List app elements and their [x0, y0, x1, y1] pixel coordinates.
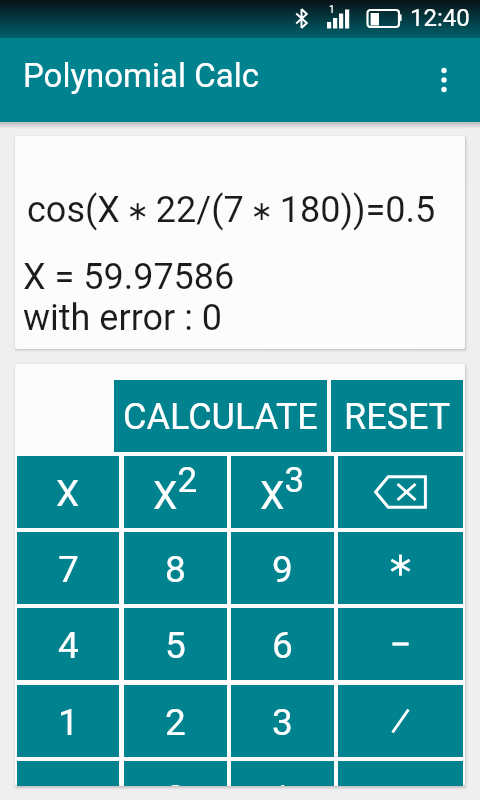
button[interactable]: 5 [124, 608, 227, 680]
button[interactable] [338, 532, 463, 604]
button[interactable]: 2 [124, 685, 227, 757]
staticText: X = 59.97586 with error : 0 [23, 256, 235, 338]
staticText: RESET [344, 396, 451, 438]
button[interactable] [338, 456, 463, 528]
staticText: cos(X ∗ 22/(7 ∗ 180))=0.5 [27, 189, 436, 231]
staticText: 8 [165, 548, 186, 591]
button[interactable]: ^ [231, 761, 334, 786]
staticText: 1 [58, 701, 79, 744]
staticText: 3 [272, 701, 293, 744]
staticText: 12:40 [410, 4, 470, 32]
button[interactable] [338, 685, 463, 757]
staticText: 6 [272, 624, 293, 667]
staticText: X3 [260, 460, 305, 518]
button[interactable]: 7 [17, 532, 119, 604]
staticText: 0 [165, 777, 186, 786]
staticText: CALCULATE [123, 396, 318, 438]
button[interactable]: 9 [231, 532, 334, 604]
button[interactable] [424, 58, 464, 102]
staticText: ^ [275, 777, 291, 786]
staticText: X [56, 472, 80, 515]
button[interactable] [338, 608, 463, 680]
button[interactable]: CALCULATE [114, 380, 327, 452]
staticText: 4 [58, 624, 79, 667]
button[interactable]: 4 [17, 608, 119, 680]
staticText: 7 [58, 548, 79, 591]
staticText: 1 [329, 4, 335, 16]
button[interactable]: 8 [124, 532, 227, 604]
button[interactable]: X2 [124, 456, 227, 528]
button[interactable]: 3 [231, 685, 334, 757]
staticText: Polynomial Calc [23, 56, 259, 95]
staticText: X2 [153, 460, 198, 518]
button[interactable]: RESET [331, 380, 463, 452]
staticText: 2 [165, 701, 186, 744]
button[interactable]: X3 [231, 456, 334, 528]
staticText: 5 [165, 624, 186, 667]
button[interactable]: 1 [17, 685, 119, 757]
staticText: 9 [272, 548, 293, 591]
button[interactable]: 6 [231, 608, 334, 680]
button[interactable]: X [17, 456, 119, 528]
button[interactable]: 0 [124, 761, 227, 786]
